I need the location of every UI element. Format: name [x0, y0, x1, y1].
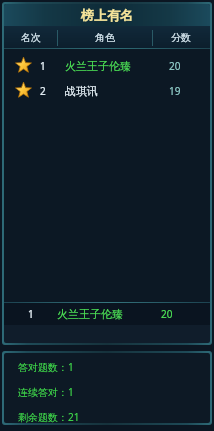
button[interactable]: Top rank star: [4, 53, 210, 78]
staticText: 20: [161, 307, 173, 321]
staticText: 名次: [21, 31, 41, 44]
staticText: 连续答对：1: [18, 385, 74, 399]
staticText: 分数: [171, 31, 191, 44]
button[interactable]: Top rank star: [4, 78, 210, 103]
staticText: 火兰王子伦臻: [65, 59, 131, 73]
staticText: 2: [40, 84, 46, 98]
staticText: 20: [169, 59, 181, 73]
other: Top rank star: [15, 82, 32, 99]
staticText: 1: [40, 59, 46, 73]
other: Top rank star: [15, 57, 32, 74]
staticText: 1: [28, 307, 34, 321]
staticText: 榜上有名: [81, 7, 133, 23]
staticText: 剩余题数：21: [18, 410, 80, 423]
staticText: 19: [169, 84, 181, 98]
staticText: 答对题数：1: [18, 360, 74, 374]
staticText: 角色: [95, 31, 115, 44]
button[interactable]: 1: [4, 303, 210, 325]
staticText: 战琪讯: [65, 84, 98, 98]
staticText: 火兰王子伦臻: [57, 307, 123, 321]
